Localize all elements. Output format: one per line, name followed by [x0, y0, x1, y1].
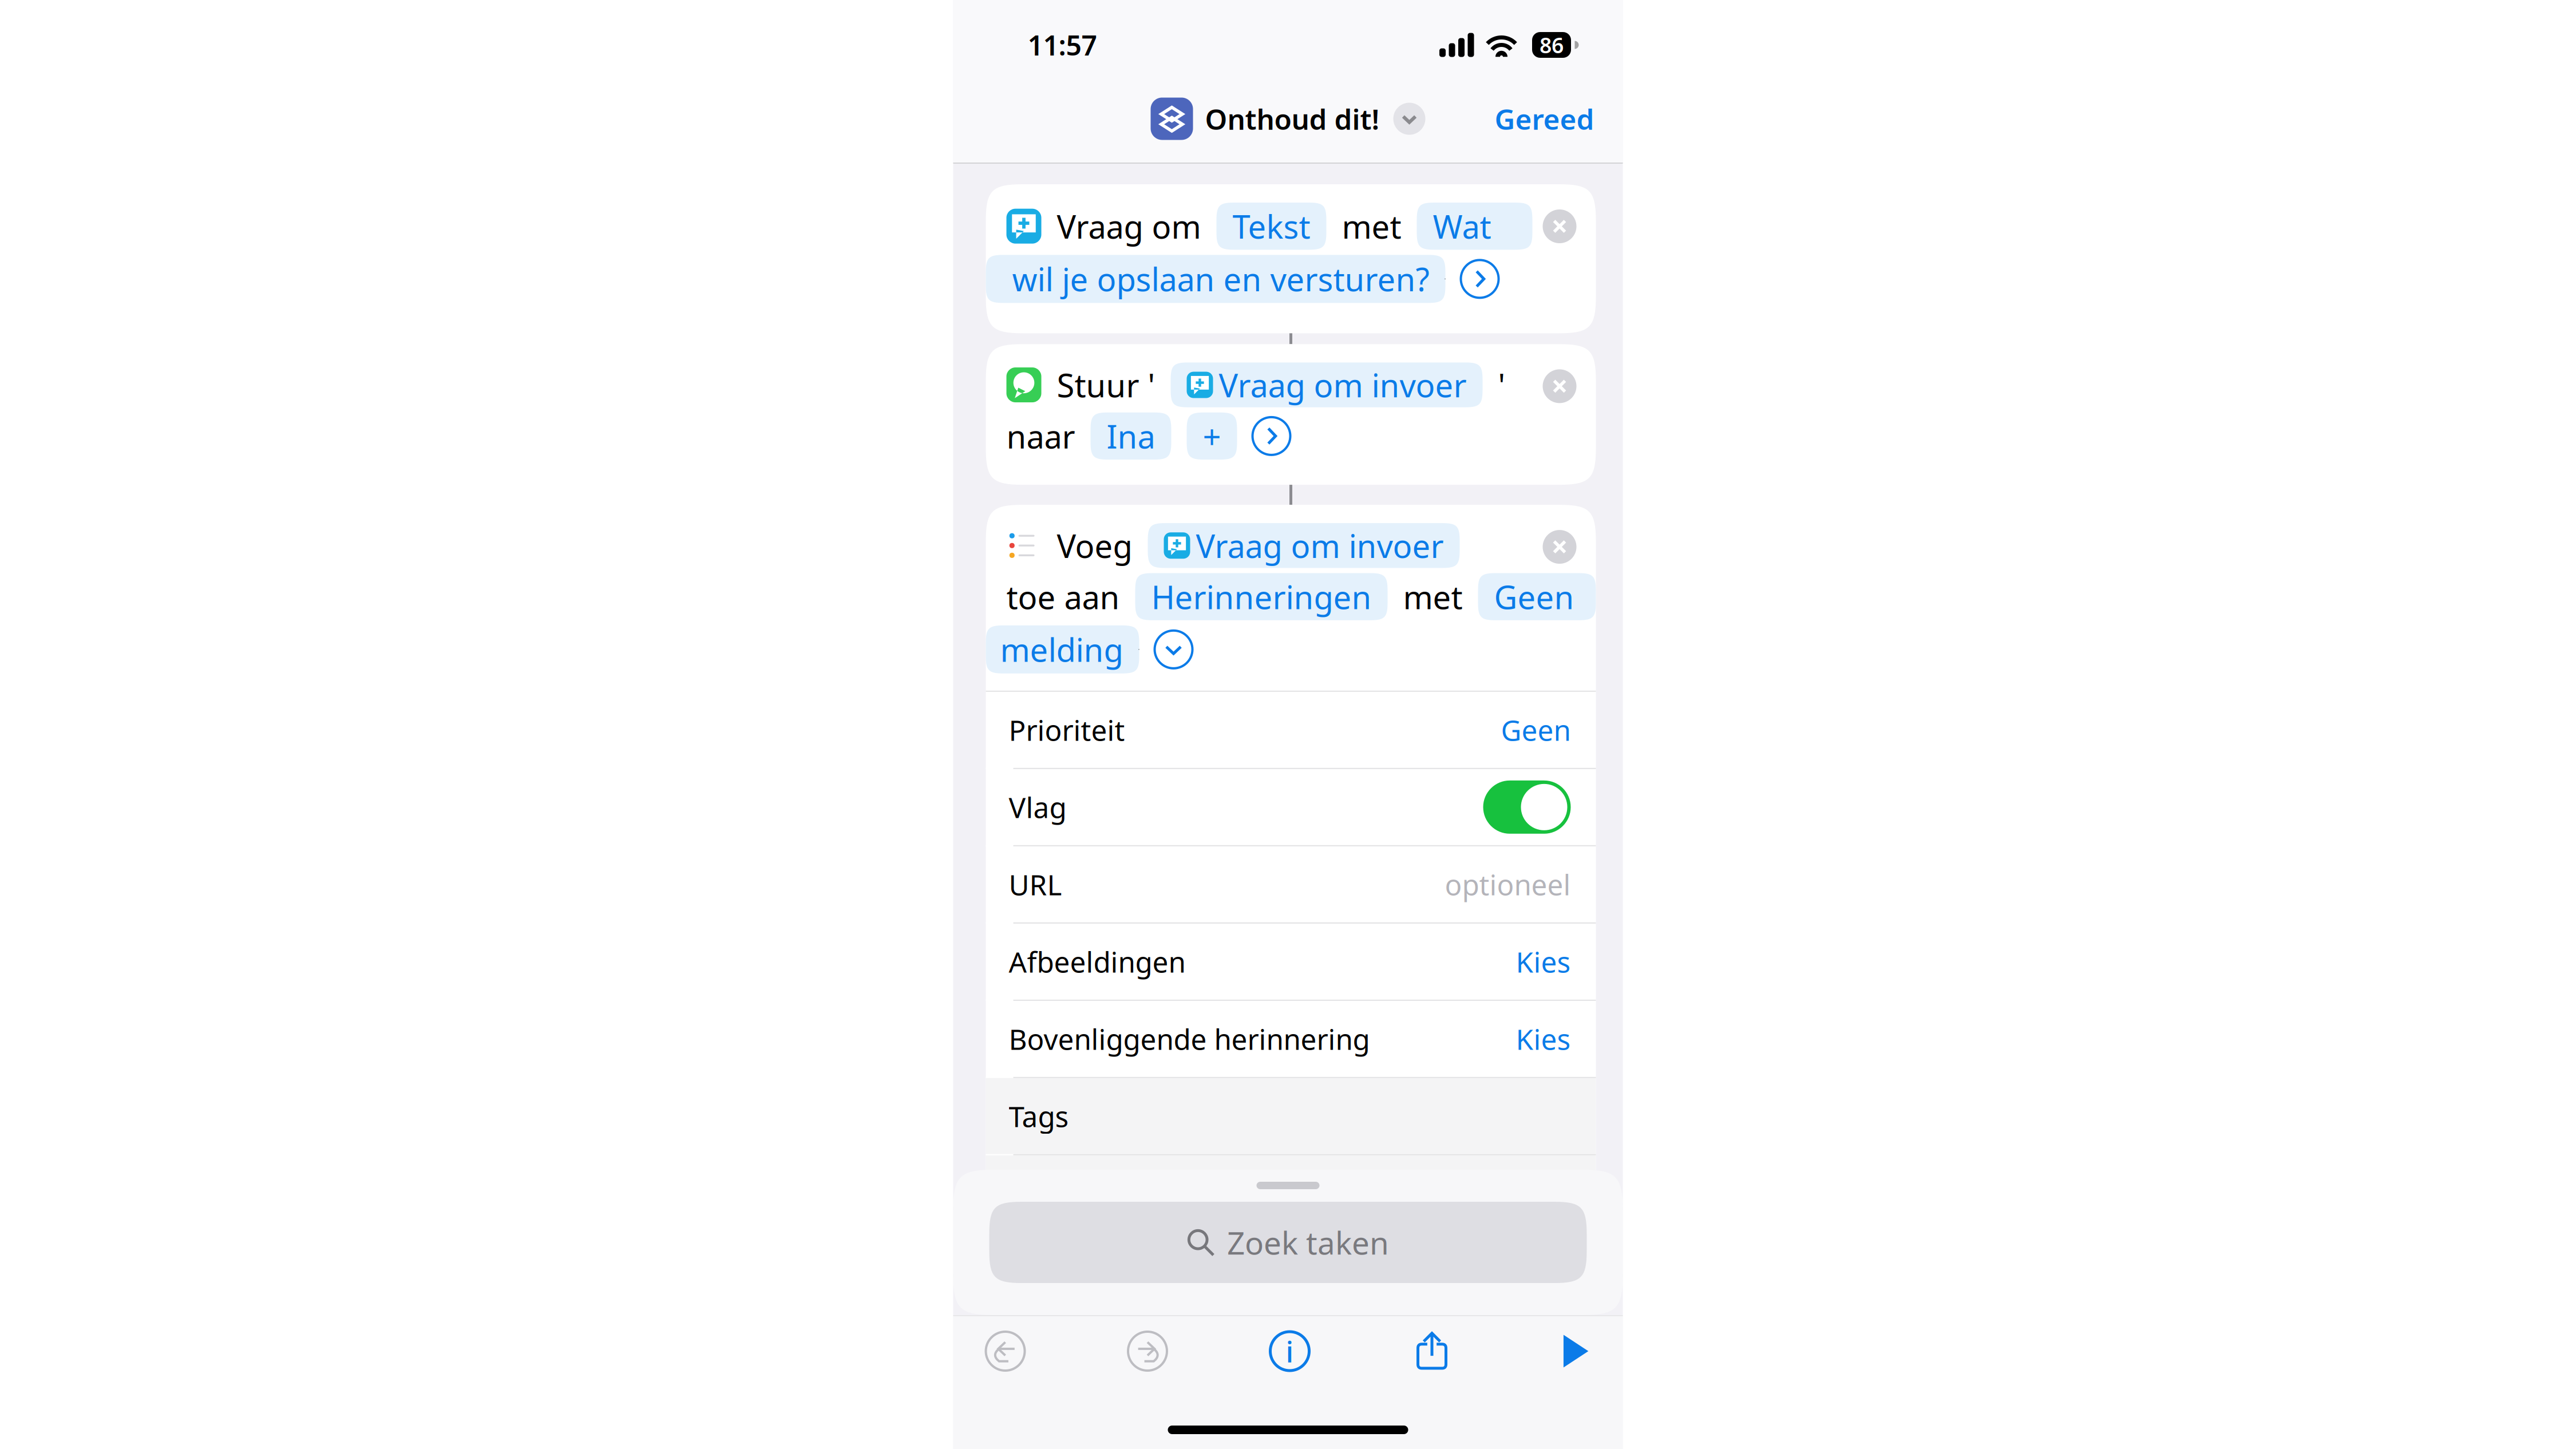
- button[interactable]: Gereed: [1466, 87, 1623, 150]
- button[interactable]: Prioriteit: [986, 692, 1596, 768]
- button[interactable]: Opnieuw: [1118, 1321, 1177, 1381]
- staticText: Prioriteit: [1009, 711, 1125, 749]
- button[interactable]: Afbeeldingen: [986, 924, 1596, 1000]
- staticText: Wat: [1433, 205, 1491, 247]
- button[interactable]: Bovenliggende herinnering: [986, 1001, 1596, 1077]
- button[interactable]: Verwijder actie: [1535, 361, 1584, 411]
- staticText: wil je opslaan en versturen?: [1012, 258, 1429, 300]
- staticText: met: [1342, 205, 1401, 247]
- staticText: Vraag om invoer: [1196, 524, 1444, 567]
- button[interactable]: Info: [1260, 1321, 1319, 1381]
- button[interactable]: Maak ongedaan: [976, 1321, 1035, 1381]
- button[interactable]: Onthoud dit!: [1151, 98, 1425, 140]
- staticText: Stuur ': [1057, 364, 1155, 406]
- staticText: Onthoud dit!: [1205, 100, 1380, 137]
- staticText: Tags: [1009, 1097, 1069, 1135]
- staticText: i: [1286, 1332, 1294, 1370]
- staticText: Geen: [1494, 575, 1574, 618]
- staticText: ': [1498, 364, 1505, 406]
- staticText: Geen: [1501, 711, 1571, 749]
- staticText: Afbeeldingen: [1009, 943, 1186, 980]
- button[interactable]: Deel: [1402, 1321, 1462, 1381]
- staticText: Vraag om invoer: [1219, 364, 1467, 406]
- button[interactable]: Verwijder actie: [1535, 201, 1584, 251]
- staticText: Zoek taken: [1227, 1222, 1389, 1263]
- button[interactable]: Voer uit: [1544, 1321, 1604, 1381]
- staticText: 86: [1540, 31, 1564, 59]
- button[interactable]: URL: [986, 846, 1596, 922]
- staticText: met: [1403, 575, 1463, 618]
- button[interactable]: Zoek taken: [989, 1202, 1587, 1283]
- button[interactable]: Verwijder actie: [1535, 522, 1584, 572]
- staticText: Ina: [1107, 415, 1155, 457]
- button[interactable]: Vlag: [986, 769, 1596, 845]
- staticText: optioneel: [1445, 866, 1571, 903]
- staticText: Voeg: [1057, 524, 1132, 567]
- staticText: URL: [1009, 866, 1062, 903]
- staticText: Vlag: [1009, 788, 1067, 826]
- staticText: Vraag om: [1057, 205, 1201, 247]
- staticText: melding: [1000, 628, 1123, 671]
- staticText: Gereed: [1495, 100, 1594, 137]
- staticText: Herinneringen: [1151, 575, 1372, 618]
- staticText: Tekst: [1232, 205, 1310, 247]
- staticText: 11:57: [1028, 27, 1097, 63]
- button[interactable]: [986, 1155, 1596, 1231]
- button[interactable]: Tags: [986, 1078, 1596, 1154]
- staticText: Kies: [1516, 1020, 1571, 1058]
- staticText: +: [1203, 415, 1221, 457]
- staticText: Bovenliggende herinnering: [1009, 1020, 1370, 1058]
- staticText: toe aan: [1006, 575, 1120, 618]
- staticText: naar: [1006, 415, 1075, 457]
- staticText: Kies: [1516, 943, 1571, 980]
